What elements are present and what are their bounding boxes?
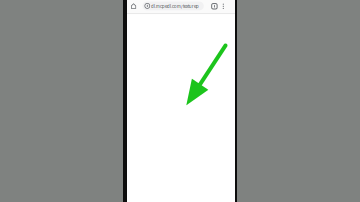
button[interactable]: Address bar: dl.mcpedl.com/texturep xyxy=(142,2,204,10)
button[interactable]: More options xyxy=(222,3,225,9)
staticText: dl.mcpedl.com/texturep xyxy=(151,4,199,9)
button[interactable]: Tabs, 1 open xyxy=(211,3,218,9)
button[interactable]: Home xyxy=(131,3,136,9)
